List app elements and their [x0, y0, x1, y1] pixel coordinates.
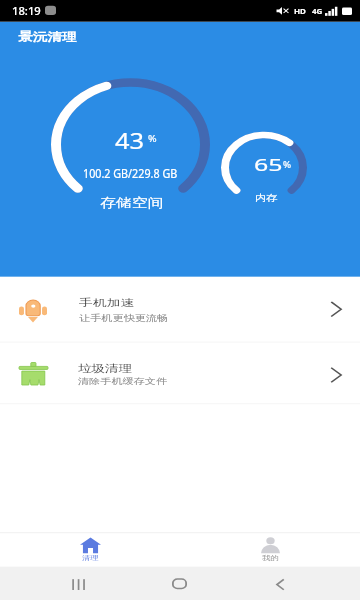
- staticText: %: [148, 133, 157, 145]
- staticText: 清除手机缓存文件: [78, 377, 167, 387]
- staticText: 内存: [255, 192, 278, 204]
- staticText: 100.2 GB/229.8 GB: [83, 165, 178, 182]
- staticText: 让手机更快更流畅: [79, 312, 168, 323]
- staticText: 存储空间: [100, 195, 164, 211]
- other: 清理: [80, 537, 101, 553]
- other: Home: [172, 578, 187, 589]
- staticText: 我的: [262, 554, 279, 562]
- other: Back: [276, 579, 284, 590]
- staticText: HD: [294, 7, 306, 16]
- staticText: 垃圾清理: [78, 362, 132, 375]
- staticText: 18:19: [12, 3, 41, 18]
- button[interactable]: [0, 343, 360, 404]
- staticText: 4G: [312, 7, 323, 16]
- button[interactable]: 我的: [225, 533, 315, 567]
- other: Recents: [72, 579, 85, 590]
- staticText: 65: [254, 153, 283, 176]
- staticText: 手机加速: [79, 297, 134, 309]
- staticText: %: [283, 159, 291, 170]
- staticText: 景沅清理: [18, 30, 77, 44]
- staticText: 清理: [82, 554, 99, 562]
- staticText: 43: [115, 126, 144, 156]
- button[interactable]: 清理: [45, 533, 135, 567]
- other: 我的: [260, 537, 281, 553]
- button[interactable]: [0, 277, 360, 342]
